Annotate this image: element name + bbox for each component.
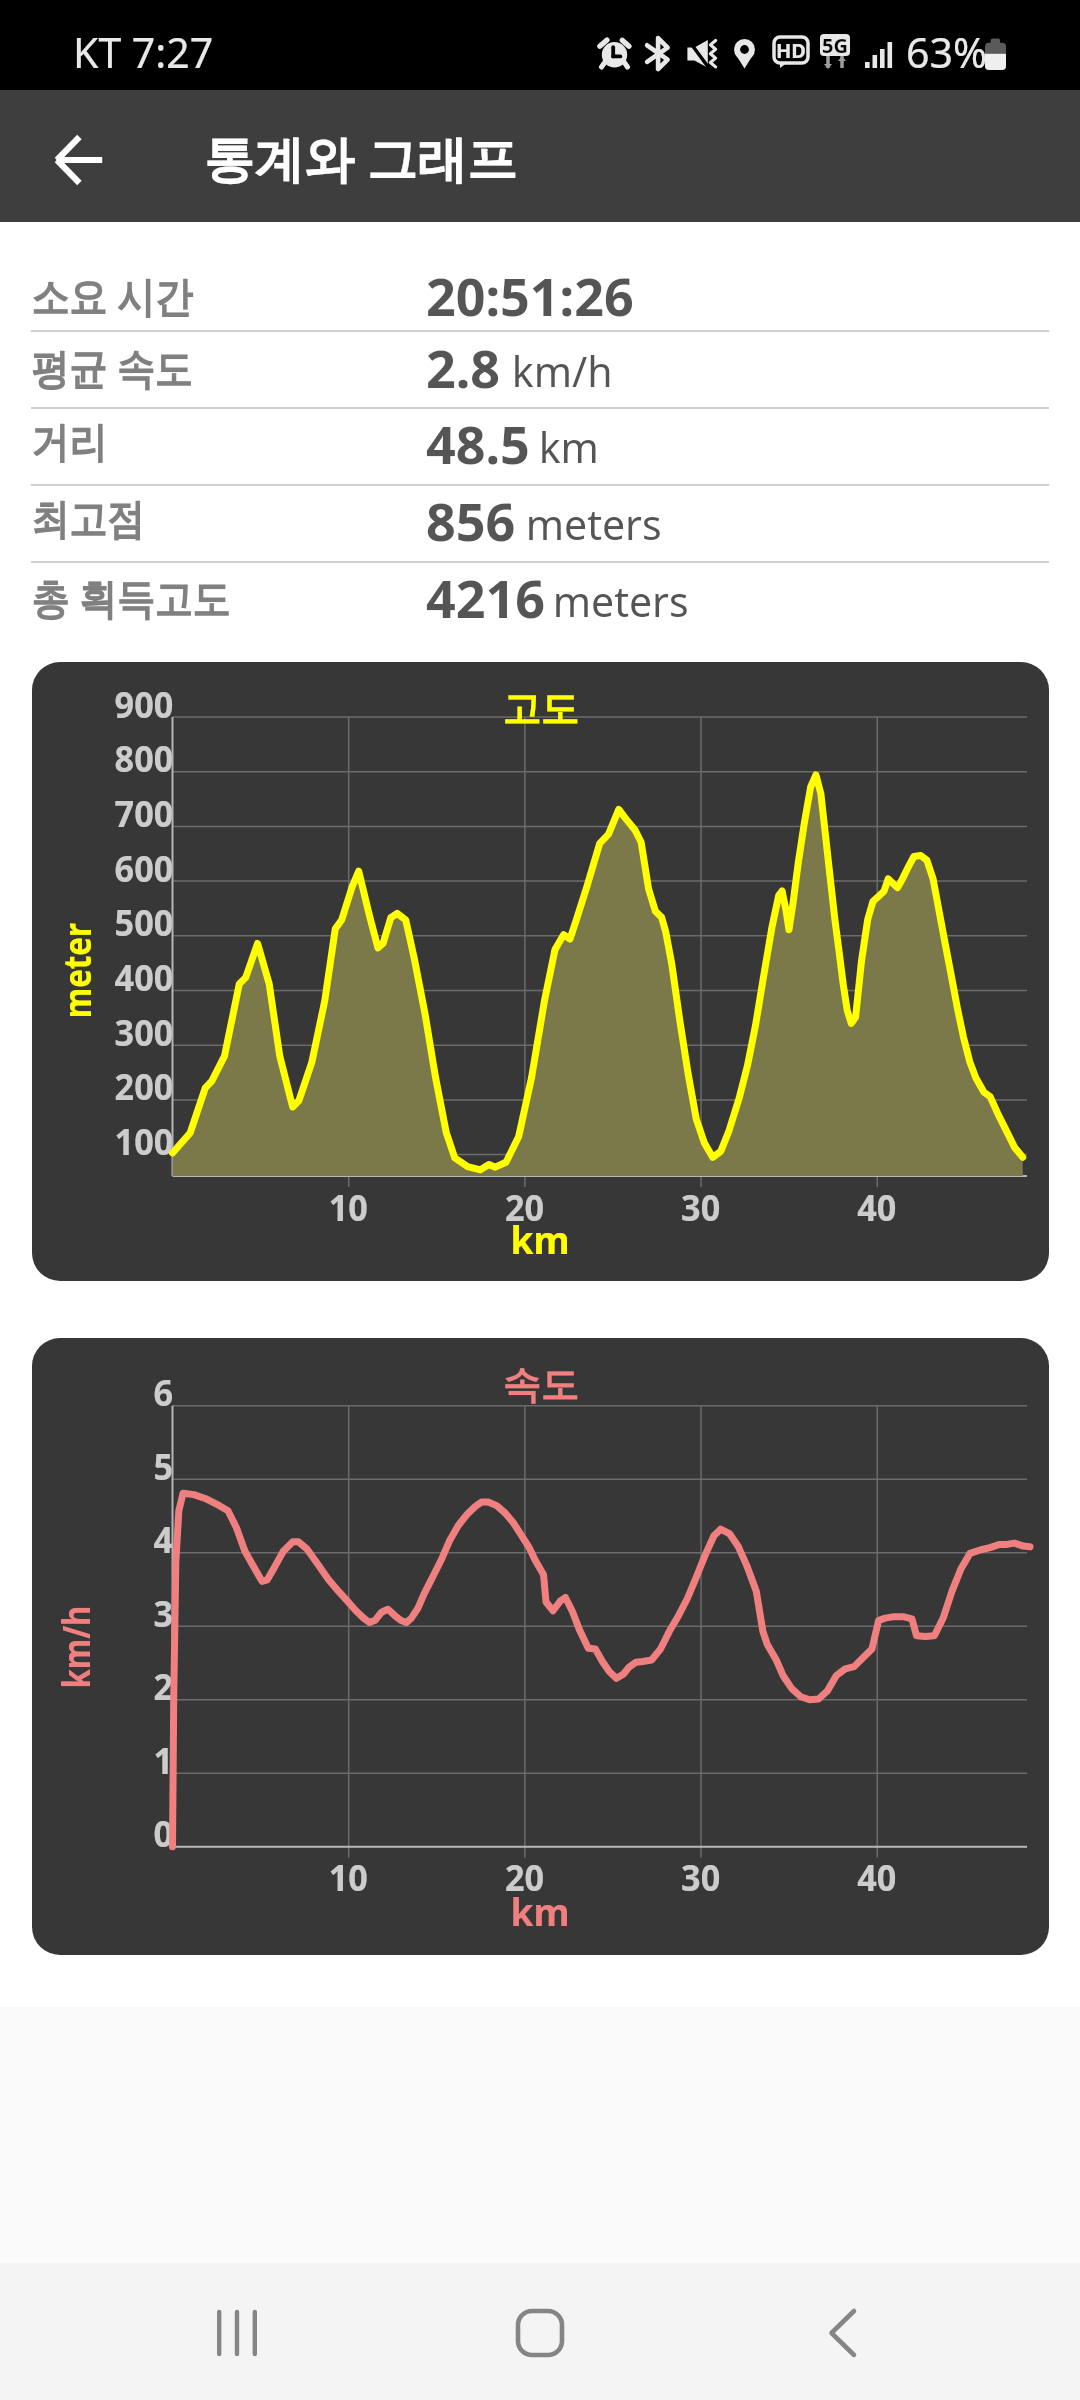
- button[interactable]: [0, 484, 1080, 561]
- button[interactable]: [0, 330, 1080, 407]
- button[interactable]: Back: [0, 90, 160, 222]
- button[interactable]: [0, 561, 1080, 638]
- button[interactable]: [0, 222, 1080, 330]
- button[interactable]: Back: [720, 2263, 1080, 2400]
- button[interactable]: Recent apps: [0, 2263, 360, 2400]
- button[interactable]: Home: [360, 2263, 720, 2400]
- button[interactable]: [0, 407, 1080, 484]
